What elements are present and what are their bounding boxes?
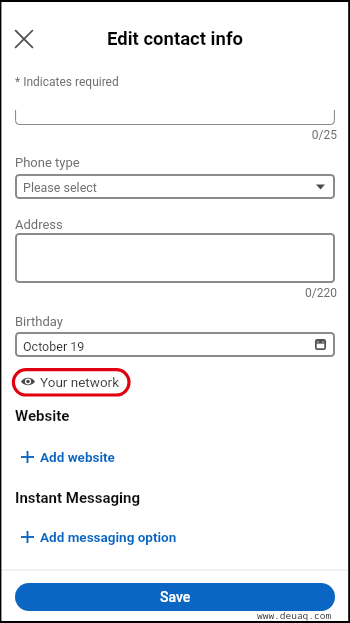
button[interactable]: Your network <box>21 371 120 392</box>
button[interactable]: October 19 <box>15 332 335 357</box>
staticText: www.deuaq.com <box>257 609 332 622</box>
staticText: Your network <box>40 374 120 390</box>
staticText: Phone type <box>15 155 80 170</box>
staticText: Save <box>160 589 191 605</box>
staticText: Address <box>15 217 63 232</box>
staticText: 0/220 <box>0 286 337 300</box>
button[interactable]: Save <box>15 583 335 611</box>
staticText: October 19 <box>23 339 85 354</box>
staticText: Add website <box>40 449 115 465</box>
staticText: Birthday <box>15 314 63 329</box>
button[interactable]: Add website <box>21 446 115 468</box>
other: Pick date <box>315 339 326 350</box>
staticText: Website <box>15 407 70 425</box>
staticText: Add messaging option <box>40 529 177 545</box>
staticText: Please select <box>23 180 97 195</box>
button[interactable]: Close <box>6 21 41 56</box>
button[interactable]: Please select <box>15 174 335 199</box>
button[interactable] <box>15 233 335 283</box>
staticText: Instant Messaging <box>15 489 141 507</box>
staticText: Edit contact info <box>0 28 350 50</box>
staticText: * Indicates required <box>15 75 119 89</box>
button[interactable] <box>15 110 335 125</box>
staticText: 0/25 <box>0 128 337 142</box>
button[interactable]: Add messaging option <box>21 526 177 548</box>
